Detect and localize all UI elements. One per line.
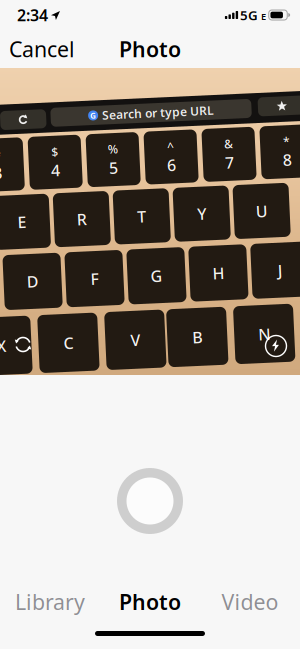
- staticText: 4: [53, 155, 62, 176]
- staticText: 8: [285, 155, 294, 176]
- staticText: V: [125, 328, 135, 350]
- staticText: 5: [111, 155, 120, 176]
- staticText: *: [286, 139, 293, 155]
- staticText: Video: [221, 588, 278, 616]
- button[interactable]: Switch Camera: [12, 334, 34, 355]
- button[interactable]: Video: [200, 578, 300, 626]
- staticText: G: [148, 265, 160, 287]
- staticText: B: [187, 328, 197, 350]
- staticText: U: [256, 205, 268, 227]
- staticText: E: [17, 205, 26, 227]
- staticText: 5G: [240, 6, 258, 24]
- staticText: Cancel: [9, 35, 75, 63]
- staticText: N: [253, 328, 265, 350]
- staticText: Photo: [119, 588, 181, 616]
- staticText: 2:34: [17, 4, 48, 26]
- staticText: Search or type URL: [107, 105, 219, 121]
- staticText: Library: [15, 588, 85, 616]
- staticText: C: [58, 328, 68, 350]
- button[interactable]: Photo: [100, 578, 200, 626]
- staticText: 7: [227, 155, 236, 176]
- staticText: D: [24, 265, 36, 287]
- staticText: F: [88, 265, 96, 287]
- button[interactable]: Flash: [265, 335, 286, 356]
- staticText: 6: [169, 155, 178, 176]
- button[interactable]: Library: [0, 578, 100, 626]
- staticText: %: [111, 139, 121, 155]
- button[interactable]: Cancel: [0, 27, 84, 71]
- staticText: 3: [0, 155, 4, 176]
- staticText: E: [261, 10, 266, 23]
- staticText: G: [95, 108, 101, 118]
- staticText: $: [54, 139, 61, 155]
- staticText: Photo: [119, 35, 181, 63]
- staticText: #: [0, 139, 4, 155]
- staticText: Y: [197, 205, 206, 227]
- staticText: J: [275, 265, 280, 287]
- staticText: R: [77, 205, 87, 227]
- staticText: T: [137, 205, 146, 227]
- staticText: H: [210, 265, 222, 287]
- staticText: &: [227, 139, 236, 155]
- staticText: X: [0, 328, 1, 350]
- button[interactable]: Take Photo: [113, 464, 187, 538]
- staticText: ^: [170, 139, 177, 155]
